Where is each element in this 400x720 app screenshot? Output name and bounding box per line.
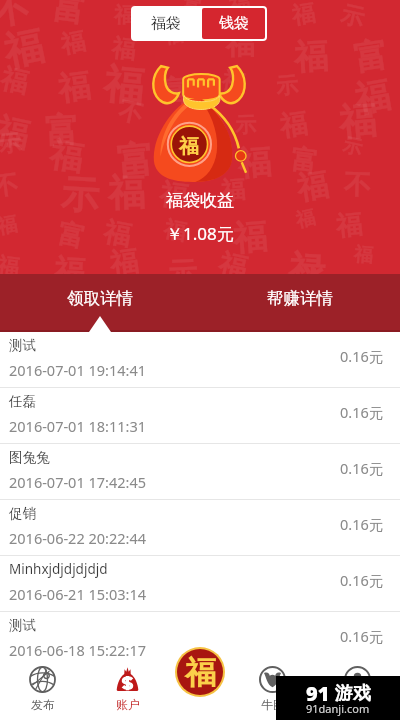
staticText: 禄 — [288, 246, 326, 293]
staticText: 福 — [180, 96, 204, 126]
staticText: 福 — [236, 141, 273, 185]
staticText: 福袋 — [151, 14, 181, 33]
staticText: 富 — [115, 135, 156, 186]
staticText: 福 — [0, 62, 31, 100]
staticText: 福 — [220, 174, 246, 206]
staticText: 钱袋 — [219, 14, 249, 33]
staticText: 福 — [0, 21, 48, 76]
staticText: 富 — [44, 108, 80, 153]
staticText: 福 — [293, 34, 329, 79]
staticText: 领取详情 — [67, 288, 133, 309]
staticText: 福 — [107, 168, 146, 217]
staticText: 2016-07-01 17:42:45 — [9, 472, 146, 492]
staticText: 福 — [102, 58, 146, 112]
staticText: 帮赚详情 — [267, 288, 333, 309]
staticText: 图兔兔 — [9, 449, 50, 466]
staticText: 我的 — [346, 697, 370, 712]
staticText: 2016-06-18 15:22:17 — [9, 640, 146, 660]
staticText: 福 — [220, 66, 246, 98]
button[interactable]: 领取详情 — [0, 274, 200, 332]
staticText: 2016-07-01 19:14:41 — [9, 360, 146, 380]
staticText: 福 — [162, 23, 185, 49]
staticText: 福 — [158, 176, 190, 215]
button[interactable]: 福袋 lucky bag — [175, 647, 225, 697]
button[interactable]: 账户 — [85, 663, 170, 720]
staticText: 示 — [338, 0, 367, 33]
button[interactable]: 福袋 — [131, 6, 200, 41]
staticText: 游戏 — [335, 682, 371, 705]
staticText: 示 — [167, 254, 198, 293]
staticText: 福 — [101, 215, 134, 253]
staticText: 福 — [179, 134, 199, 159]
staticText: 福 — [290, 0, 317, 31]
staticText: 福 — [55, 65, 93, 109]
staticText: 富 — [351, 33, 391, 80]
staticText: 福 — [185, 653, 216, 692]
staticText: 福 — [226, 26, 255, 63]
staticText: Minhxjdjdjdjdjd — [9, 560, 108, 578]
staticText: 91danji.com — [306, 701, 370, 716]
staticText: 示 — [59, 170, 100, 220]
staticText: 示 — [235, 112, 256, 138]
staticText: 牛圈 — [261, 697, 285, 712]
staticText: 福 — [294, 165, 331, 208]
staticText: 2016-06-22 20:22:44 — [9, 528, 146, 548]
staticText: 福 — [227, 0, 252, 19]
button[interactable]: 任磊 — [0, 388, 400, 444]
staticText: 福 — [0, 211, 19, 239]
staticText: 福 — [337, 96, 378, 146]
staticText: 测试 — [9, 617, 36, 634]
button[interactable]: Minhxjdjdjdjdjd — [0, 556, 400, 612]
staticText: 0.16元 — [340, 458, 384, 478]
staticText: 福 — [294, 205, 317, 233]
staticText: 福 — [53, 251, 86, 292]
staticText: 示 — [0, 129, 22, 159]
staticText: 福 — [351, 72, 393, 122]
staticText: 富 — [55, 217, 88, 255]
staticText: 2016-07-01 18:11:31 — [9, 416, 146, 436]
staticText: 账户 — [116, 697, 140, 712]
staticText: 福 — [179, 134, 202, 162]
staticText: 不 — [0, 168, 20, 203]
staticText: 福 — [353, 242, 374, 268]
button[interactable]: 促销 — [0, 500, 400, 556]
staticText: 0.16元 — [340, 346, 384, 366]
staticText: 福 — [161, 215, 188, 247]
staticText: 福 — [58, 26, 88, 60]
staticText: 富 — [180, 0, 203, 21]
staticText: 福 — [47, 134, 86, 180]
staticText: 富 — [159, 72, 190, 111]
staticText: 示 — [275, 71, 299, 101]
button[interactable]: 钱袋 — [202, 8, 265, 39]
staticText: 福袋收益 — [166, 190, 234, 211]
button[interactable]: 测试 — [0, 612, 400, 668]
staticText: 福 — [334, 208, 364, 243]
button[interactable]: 测试 — [0, 332, 400, 388]
staticText: 富 — [289, 142, 320, 179]
staticText: 福 — [231, 215, 269, 260]
button[interactable]: 发布 — [0, 663, 85, 720]
staticText: 0.16元 — [340, 402, 384, 422]
staticText: 0.16元 — [340, 514, 384, 534]
staticText: 91 — [306, 680, 330, 707]
button[interactable]: 帮赚详情 — [200, 274, 400, 332]
staticText: 任磊 — [9, 393, 36, 410]
staticText: 不 — [116, 96, 146, 130]
staticText: 不 — [343, 168, 371, 202]
staticText: 促销 — [9, 505, 36, 522]
staticText: 测试 — [9, 337, 36, 354]
button[interactable]: 牛圈 — [230, 663, 315, 720]
staticText: ￥1.08元 — [166, 222, 234, 245]
staticText: 福 — [110, 33, 138, 65]
button[interactable]: 图兔兔 — [0, 444, 400, 500]
staticText: 福 — [0, 252, 21, 282]
staticText: 福 — [114, 2, 135, 28]
staticText: 福 — [278, 106, 309, 144]
button[interactable]: 我的 — [315, 663, 400, 720]
staticText: 0.16元 — [340, 626, 384, 646]
staticText: 富 — [49, 0, 89, 32]
staticText: 福 — [108, 243, 140, 282]
staticText: 福 — [0, 109, 33, 157]
staticText: 不 — [0, 0, 32, 34]
staticText: 示 — [341, 133, 364, 161]
